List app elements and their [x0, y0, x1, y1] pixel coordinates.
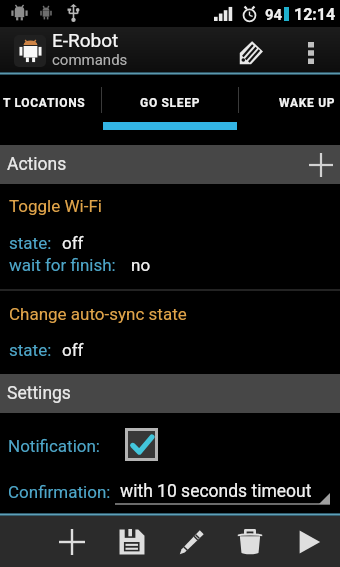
- button[interactable]: Save: [104, 516, 160, 567]
- staticText: wait for finish:: [9, 255, 116, 275]
- staticText: GO SLEEP: [140, 96, 201, 110]
- staticText: E-Robot: [52, 29, 119, 51]
- staticText: WAKE UP: [279, 96, 336, 110]
- staticText: Notification:: [8, 436, 100, 456]
- staticText: with 10 seconds timeout: [120, 481, 312, 502]
- staticText: T LOCATIONS: [3, 96, 86, 110]
- button[interactable]: T LOCATIONS: [0, 75, 113, 130]
- button[interactable]: Notification:: [0, 413, 340, 466]
- button[interactable]: GO SLEEP: [102, 75, 238, 130]
- button[interactable]: Add: [300, 145, 340, 184]
- staticText: commands: [52, 51, 128, 69]
- button[interactable]: Run: [281, 516, 337, 567]
- staticText: Confirmation:: [8, 482, 111, 502]
- staticText: state:: [9, 233, 52, 253]
- staticText: Settings: [7, 383, 71, 404]
- button[interactable]: Add: [44, 516, 100, 567]
- button[interactable]: Edit: [227, 27, 275, 75]
- staticText: 94: [265, 6, 283, 24]
- staticText: state:: [9, 340, 52, 360]
- button[interactable]: Edit: [164, 516, 220, 567]
- button[interactable]: Delete: [222, 516, 278, 567]
- staticText: Actions: [7, 154, 67, 175]
- staticText: Change auto-sync state: [9, 304, 187, 324]
- staticText: 12:14: [294, 5, 336, 24]
- staticText: off: [62, 233, 84, 253]
- staticText: Toggle Wi-Fi: [9, 196, 102, 216]
- button[interactable]: Toggle Wi-Fi: [0, 184, 340, 289]
- button[interactable]: More options: [288, 27, 340, 75]
- button[interactable]: Confirmation:: [0, 466, 340, 513]
- staticText: off: [62, 340, 84, 360]
- button[interactable]: Change auto-sync state: [0, 291, 340, 374]
- staticText: no: [131, 255, 151, 275]
- button[interactable]: WAKE UP: [239, 75, 340, 130]
